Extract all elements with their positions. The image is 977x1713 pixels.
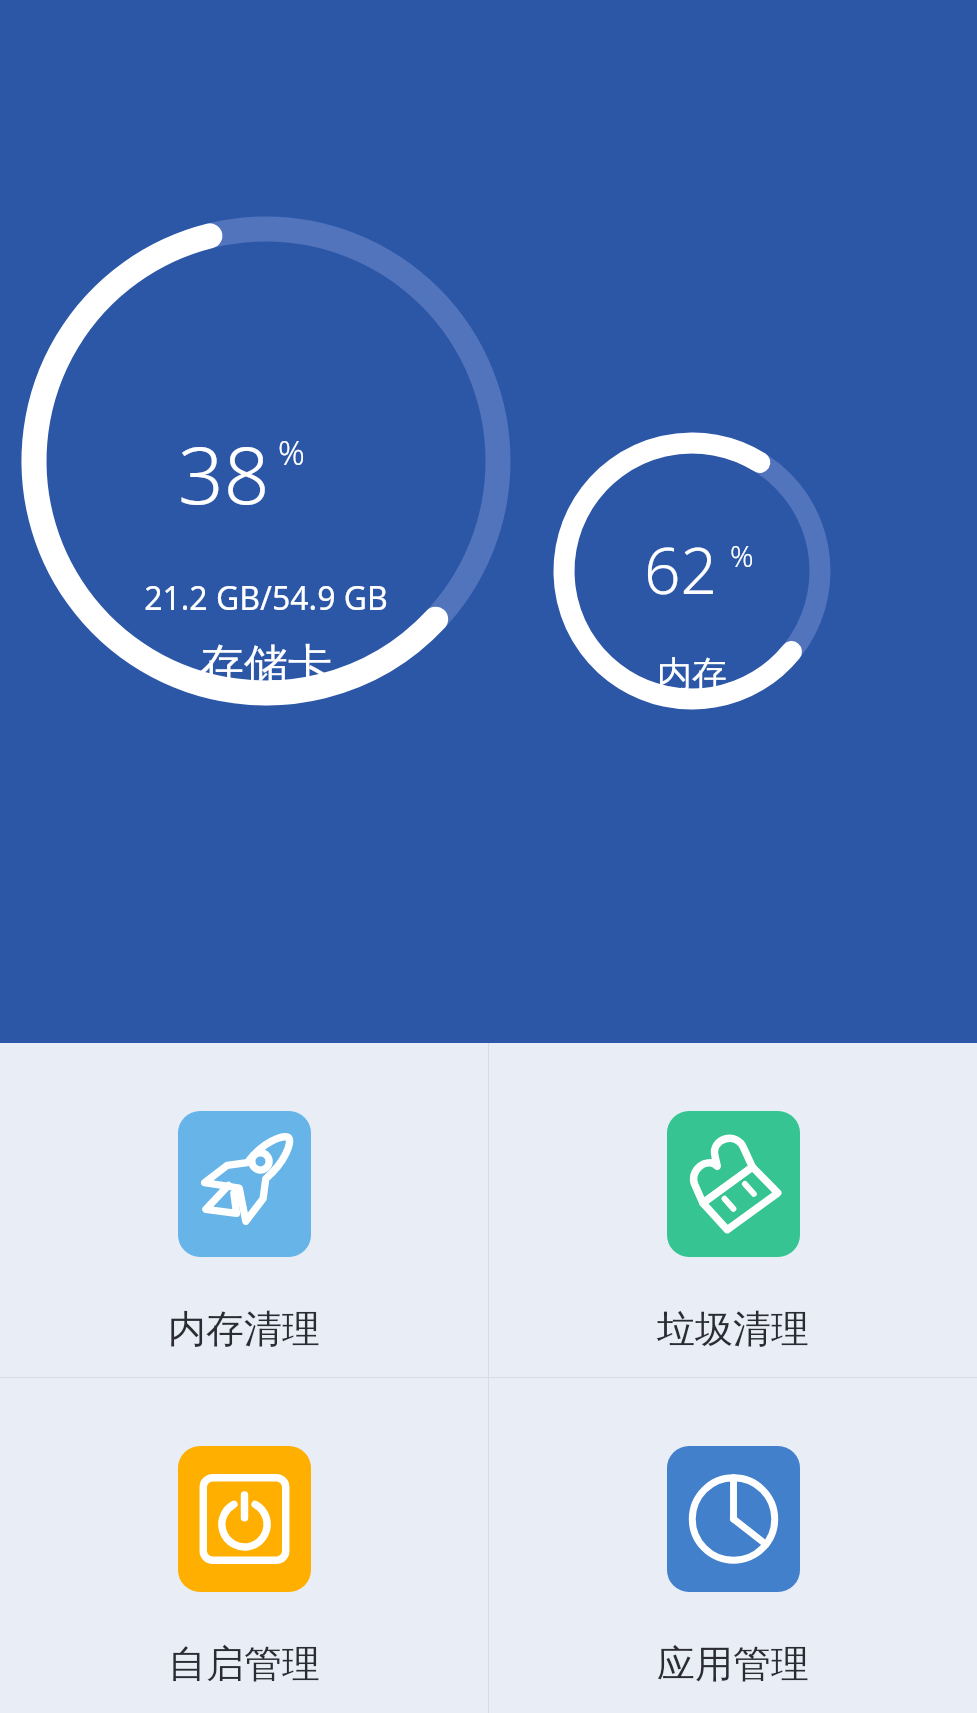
staticText: 垃圾清理 <box>657 1305 809 1353</box>
staticText: 存储卡 <box>86 638 446 693</box>
other: Junk clean <box>667 1111 800 1257</box>
staticText: 自启管理 <box>168 1640 320 1688</box>
staticText: 内存 <box>572 652 812 696</box>
staticText: 内存清理 <box>168 1305 320 1353</box>
other: Memory boost <box>178 1111 311 1257</box>
button[interactable]: Autostart manager <box>0 1378 488 1713</box>
other: Autostart manager <box>178 1446 311 1592</box>
staticText: 21.2 GB/54.9 GB <box>86 576 446 620</box>
button[interactable]: Junk clean <box>489 1043 977 1377</box>
other: App manager <box>667 1446 800 1592</box>
button[interactable]: Memory boost <box>0 1043 488 1377</box>
button[interactable]: App manager <box>489 1378 977 1713</box>
staticText: % <box>278 430 305 475</box>
staticText: 应用管理 <box>657 1640 809 1688</box>
staticText: 62 <box>644 526 718 613</box>
staticText: 38 <box>178 418 270 527</box>
staticText: % <box>730 536 754 575</box>
